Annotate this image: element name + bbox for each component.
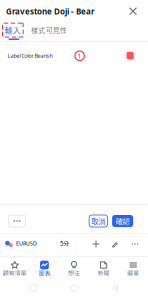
button[interactable]: 觀察清單 <box>0 256 30 280</box>
button[interactable]: More options <box>9 215 25 227</box>
staticText: 圖表 <box>38 269 50 277</box>
button[interactable]: 取消 <box>89 215 107 227</box>
staticText: Label Color Bearish <box>7 52 52 59</box>
staticText: 選單 <box>127 269 139 277</box>
staticText: 5分 <box>60 239 69 248</box>
button[interactable]: 想法 <box>59 256 89 280</box>
button[interactable]: Add indicator <box>89 237 102 250</box>
button[interactable]: Close <box>126 4 140 18</box>
staticText: 1 <box>78 51 82 60</box>
staticText: 輸入 <box>5 24 21 36</box>
staticText: 觀察清單 <box>3 269 27 277</box>
button[interactable]: More <box>128 237 141 250</box>
staticText: 確認 <box>116 216 130 226</box>
staticText: 想法 <box>68 269 80 277</box>
button[interactable]: 選單 <box>118 256 148 280</box>
button[interactable]: 樣式 <box>30 23 46 37</box>
button[interactable]: 圖表 <box>30 256 59 280</box>
button[interactable]: Label colour <box>124 49 136 62</box>
button[interactable]: 確認 <box>112 215 133 227</box>
button[interactable]: Drawing tools <box>108 237 121 250</box>
staticText: 樣式 <box>31 25 45 35</box>
staticText: 取消 <box>91 216 105 226</box>
staticText: 新聞 <box>98 269 110 277</box>
staticText: 可見性 <box>46 25 67 35</box>
button[interactable]: 可見性 <box>46 23 66 37</box>
button[interactable]: 新聞 <box>89 256 118 280</box>
staticText: EURUSD <box>16 240 37 247</box>
staticText: Gravestone Doji - Bear <box>6 6 95 17</box>
